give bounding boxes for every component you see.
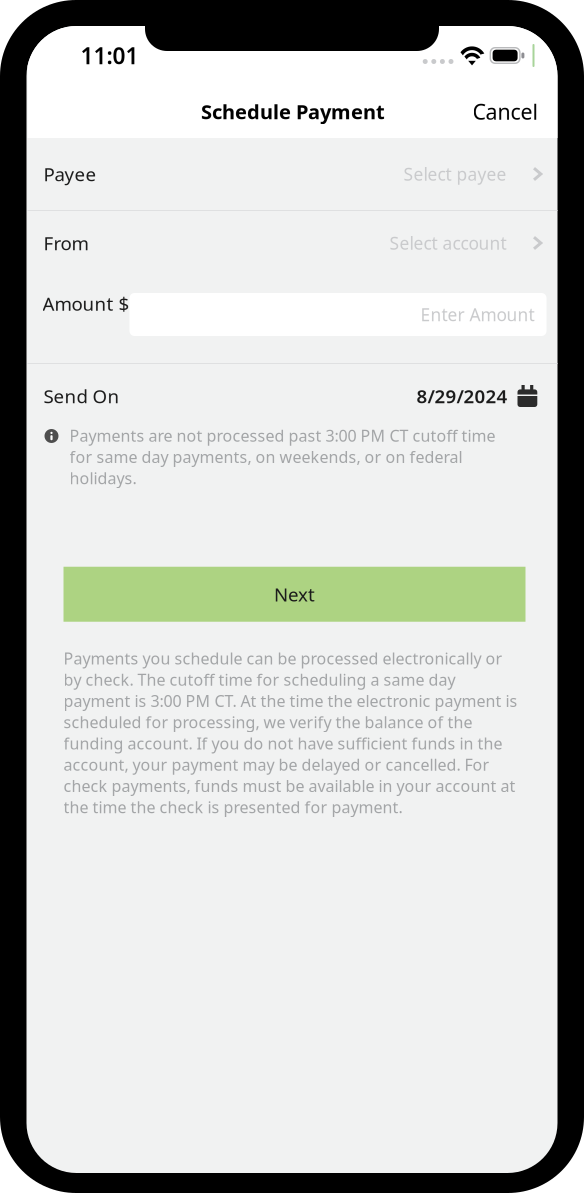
button[interactable]: From bbox=[27, 211, 558, 275]
staticText: Payments are not processed past 3:00 PM … bbox=[69, 425, 495, 489]
staticText: Cancel bbox=[472, 97, 538, 126]
staticText: Payments you schedule can be processed e… bbox=[63, 648, 517, 818]
staticText: From bbox=[43, 231, 88, 255]
staticText: 11:01 bbox=[80, 40, 138, 70]
button[interactable]: Cancel bbox=[464, 89, 546, 134]
button[interactable]: Enter Amount bbox=[129, 293, 546, 336]
staticText: Select account bbox=[389, 231, 506, 254]
staticText: Send On bbox=[43, 384, 119, 408]
staticText: 8/29/2024 bbox=[416, 384, 507, 408]
button[interactable]: 8/29/2024 bbox=[416, 384, 537, 408]
staticText: Schedule Payment bbox=[201, 98, 385, 125]
staticText: Enter Amount bbox=[420, 303, 534, 326]
button[interactable]: Payee bbox=[27, 138, 558, 210]
staticText: Select payee bbox=[403, 162, 506, 185]
staticText: Amount $ bbox=[42, 291, 129, 316]
button[interactable]: Next bbox=[63, 567, 525, 622]
staticText: Next bbox=[274, 582, 315, 607]
staticText: Payee bbox=[43, 162, 96, 186]
